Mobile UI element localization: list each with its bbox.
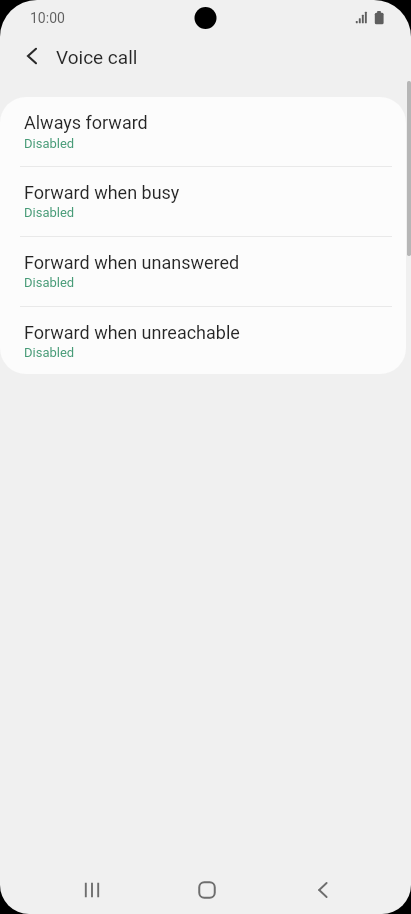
button[interactable]: Back xyxy=(298,866,346,914)
button[interactable]: Home xyxy=(183,866,231,914)
staticText: Forward when busy xyxy=(24,182,180,203)
staticText: Voice call xyxy=(56,46,138,68)
staticText: Disabled xyxy=(24,345,75,360)
staticText: Disabled xyxy=(24,136,75,151)
button[interactable]: Recent apps xyxy=(68,866,116,914)
staticText: Forward when unreachable xyxy=(24,322,240,343)
button[interactable]: Forward when busy xyxy=(0,166,406,236)
staticText: Forward when unanswered xyxy=(24,252,240,273)
button[interactable]: Forward when unanswered xyxy=(0,236,406,306)
button[interactable]: Forward when unreachable xyxy=(0,306,406,374)
staticText: Disabled xyxy=(24,275,75,290)
staticText: Always forward xyxy=(24,112,148,133)
staticText: 10:00 xyxy=(30,10,65,26)
staticText: Disabled xyxy=(24,205,75,220)
button[interactable]: Navigate up xyxy=(10,38,54,82)
button[interactable]: Always forward xyxy=(0,97,406,166)
